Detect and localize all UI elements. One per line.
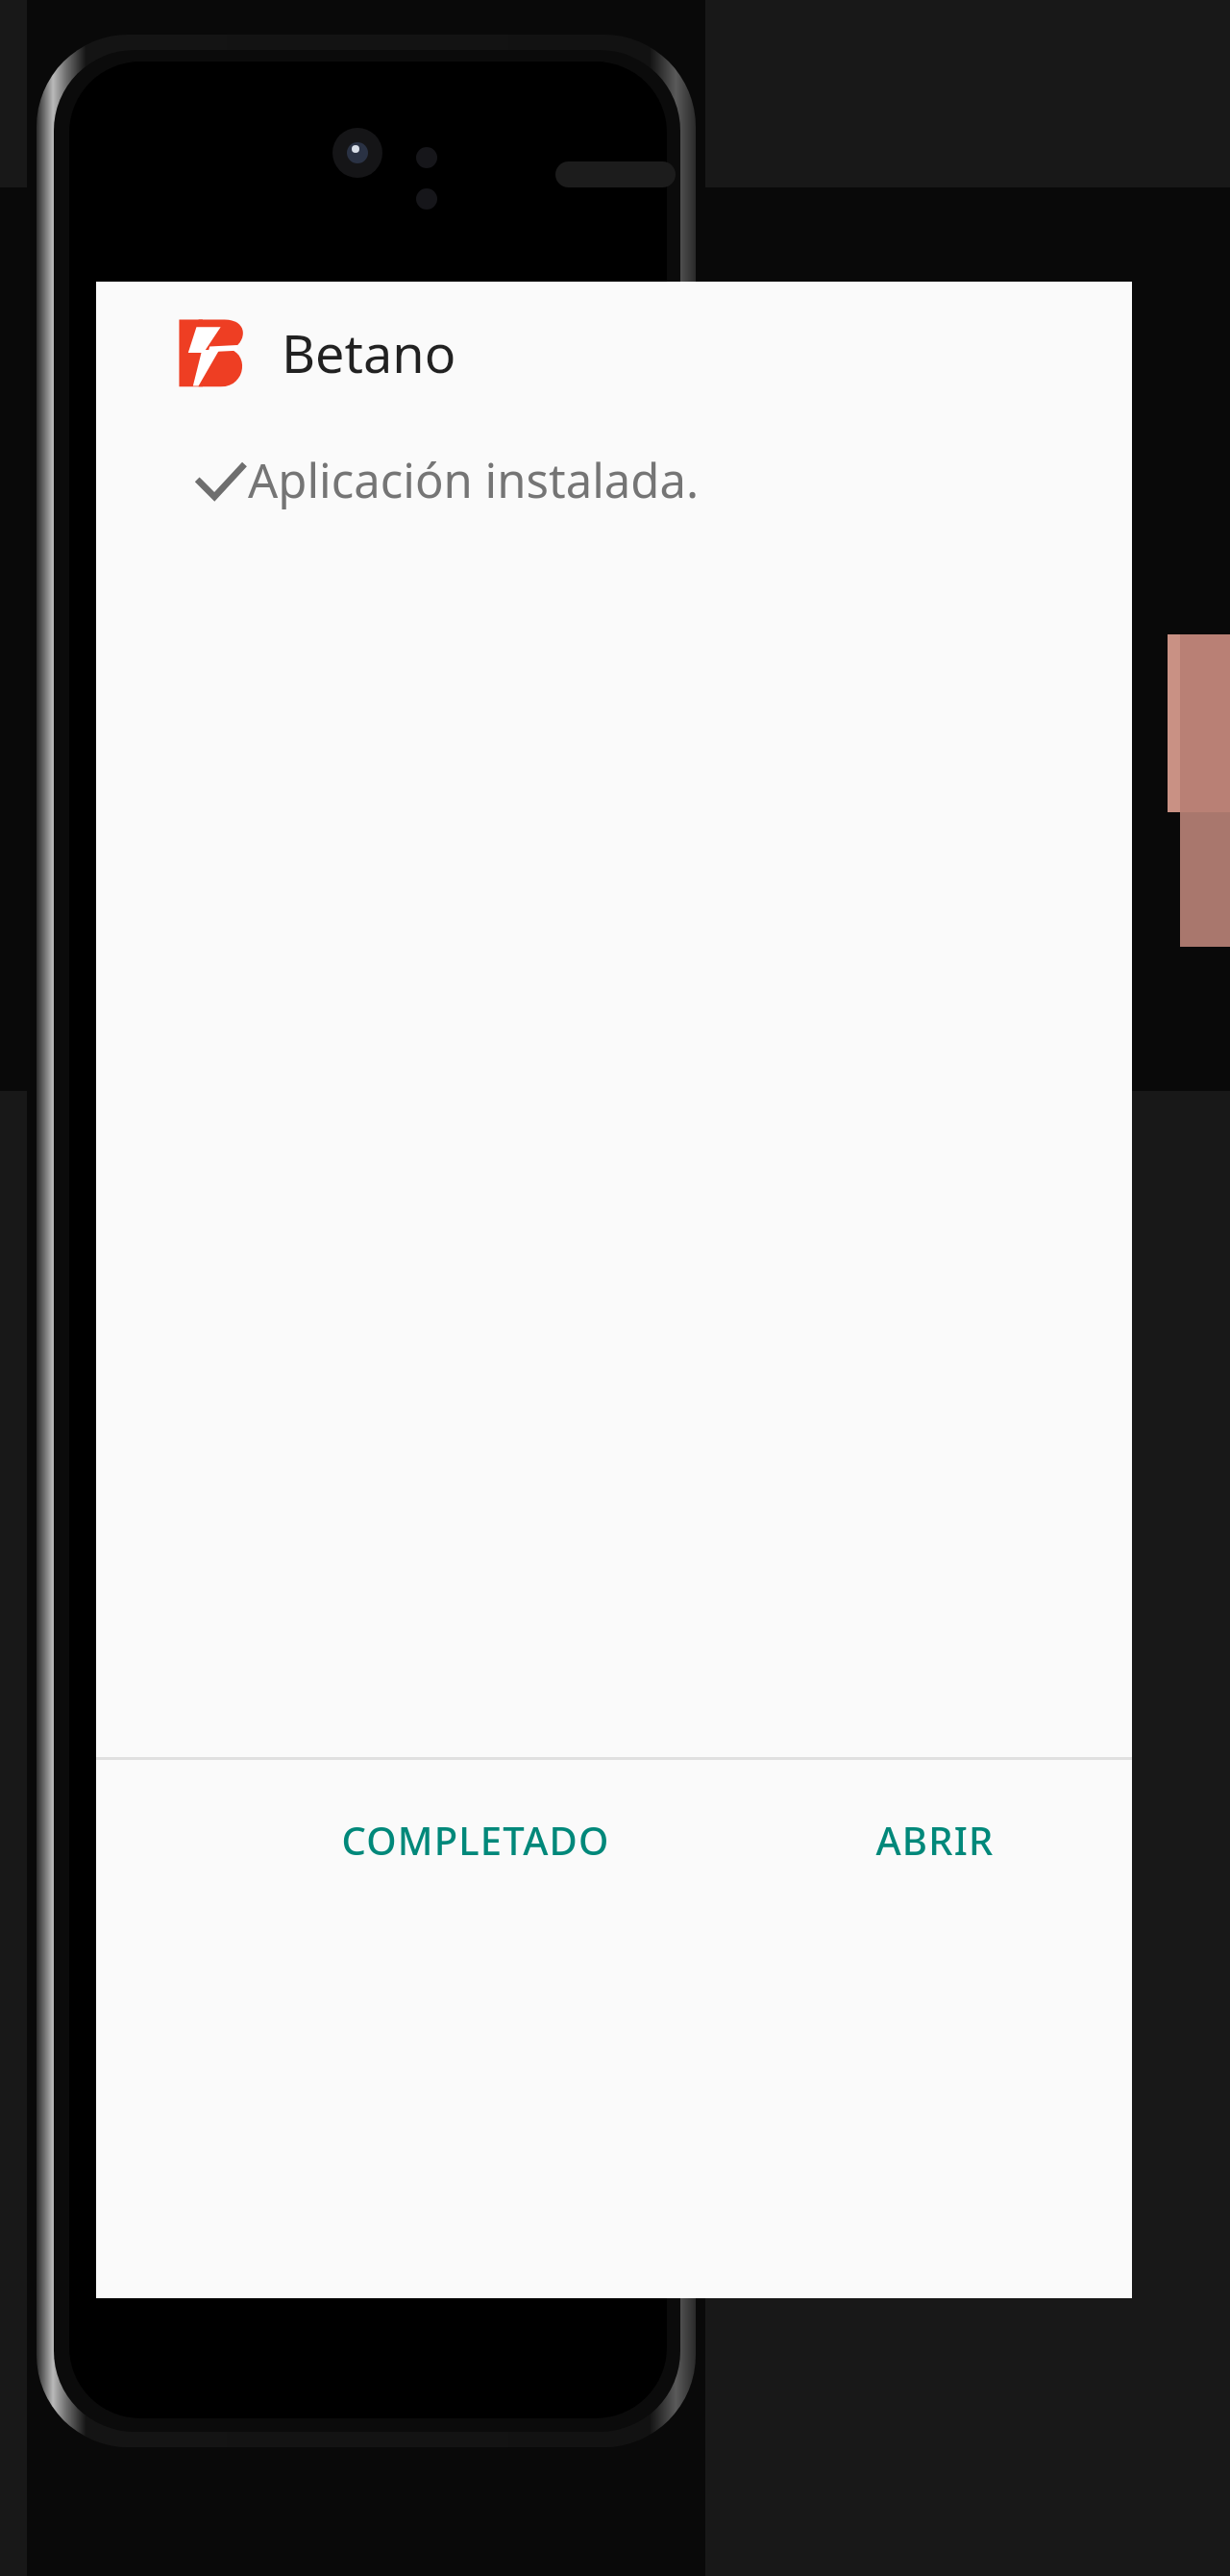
staticText: ABRIR	[875, 1814, 995, 1866]
button[interactable]: COMPLETADO	[317, 1784, 634, 1895]
button[interactable]: ABRIR	[783, 1784, 1086, 1895]
other: Betano app icon	[178, 318, 247, 387]
staticText: Aplicación instalada.	[248, 448, 700, 512]
staticText: COMPLETADO	[341, 1814, 610, 1866]
staticText: Betano	[282, 317, 456, 388]
